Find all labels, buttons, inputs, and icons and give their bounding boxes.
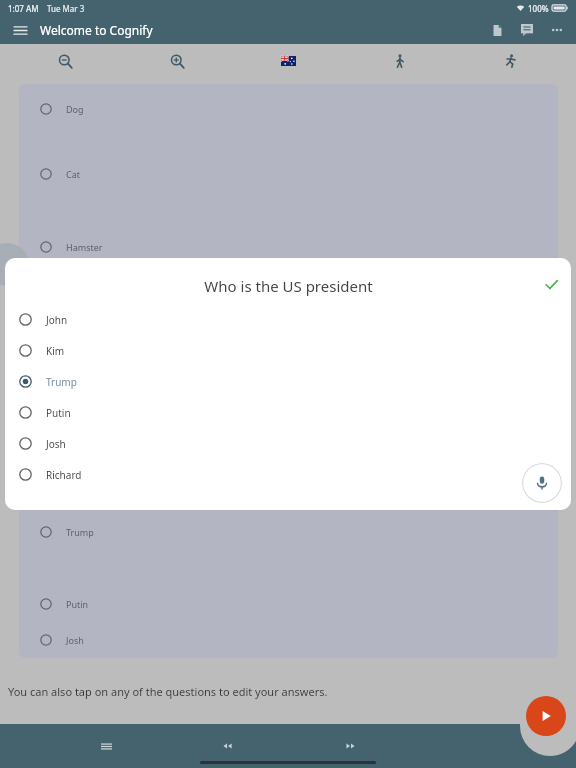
staticText: Josh bbox=[66, 634, 84, 646]
button[interactable]: Voice input bbox=[522, 463, 562, 503]
staticText: John bbox=[46, 313, 68, 327]
button[interactable]: Putin bbox=[19, 586, 558, 622]
button[interactable]: Rewind bbox=[211, 729, 245, 763]
button[interactable]: Running speed bbox=[494, 44, 528, 78]
staticText: Who is the US president bbox=[204, 276, 373, 296]
staticText: Parrot bbox=[66, 314, 93, 326]
staticText: 100% bbox=[528, 3, 549, 14]
button[interactable]: Play bbox=[526, 696, 566, 736]
button[interactable]: Messages bbox=[512, 16, 542, 44]
button[interactable]: Putin bbox=[5, 397, 571, 428]
staticText: Trump bbox=[46, 375, 77, 389]
staticText: Hamster bbox=[66, 241, 103, 253]
button[interactable]: John bbox=[5, 304, 571, 335]
button[interactable]: Josh bbox=[19, 622, 558, 658]
button[interactable]: Kim bbox=[5, 335, 571, 366]
button[interactable]: Zoom out bbox=[48, 44, 82, 78]
staticText: Richard bbox=[46, 468, 82, 482]
staticText: Trump bbox=[66, 526, 94, 538]
button[interactable]: Spider bbox=[19, 374, 558, 410]
staticText: Spider bbox=[66, 386, 94, 398]
button[interactable]: Josh bbox=[5, 428, 571, 459]
button[interactable]: Back bbox=[0, 243, 29, 286]
staticText: Welcome to Cognify bbox=[40, 22, 153, 38]
staticText: Putin bbox=[66, 598, 89, 610]
staticText: Kim bbox=[46, 344, 65, 358]
button[interactable]: Document bbox=[482, 16, 512, 44]
button[interactable]: More options bbox=[542, 16, 572, 44]
button[interactable]: Menu bbox=[89, 729, 123, 763]
button[interactable]: Language: Australia bbox=[271, 44, 305, 78]
staticText: You can also tap on any of the questions… bbox=[8, 684, 328, 699]
button[interactable]: Open navigation drawer bbox=[0, 16, 40, 44]
staticText: Dog bbox=[66, 103, 84, 115]
button[interactable]: Richard bbox=[5, 459, 571, 490]
button[interactable]: Dog bbox=[19, 91, 558, 127]
button[interactable]: Zoom in bbox=[160, 44, 194, 78]
button[interactable]: Cat bbox=[19, 156, 558, 192]
button[interactable]: Confirm answer bbox=[539, 272, 563, 296]
button[interactable]: Trump bbox=[19, 514, 558, 550]
button[interactable]: Walking speed bbox=[383, 44, 417, 78]
staticText: Cat bbox=[66, 168, 80, 180]
button[interactable]: Fast forward bbox=[334, 729, 368, 763]
staticText: Putin bbox=[46, 406, 71, 420]
staticText: Josh bbox=[46, 437, 66, 451]
staticText: Tue Mar 3 bbox=[47, 3, 85, 14]
staticText: 1:07 AM bbox=[8, 3, 39, 14]
button[interactable]: Parrot bbox=[19, 302, 558, 338]
button[interactable]: Hamster bbox=[19, 229, 558, 265]
button[interactable]: Trump bbox=[5, 366, 571, 397]
